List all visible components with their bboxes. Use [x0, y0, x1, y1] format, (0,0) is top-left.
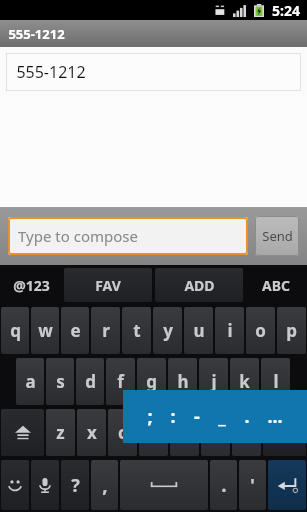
button[interactable]: j	[199, 358, 228, 405]
staticText: k	[239, 370, 250, 393]
button[interactable]: Emoji	[1, 460, 29, 510]
button[interactable]: d	[76, 358, 104, 405]
button[interactable]: Enter	[268, 460, 306, 510]
button[interactable]: FAV	[64, 268, 152, 302]
staticText: .	[244, 404, 250, 429]
staticText: p	[286, 319, 297, 342]
staticText: x	[87, 421, 97, 444]
staticText: '	[250, 474, 255, 497]
staticText: Type to compose	[18, 226, 138, 246]
button[interactable]: p	[277, 307, 306, 354]
button[interactable]: n	[201, 409, 230, 456]
button[interactable]: Type to compose	[8, 217, 248, 255]
staticText: ;	[147, 404, 153, 429]
button[interactable]: s	[46, 358, 74, 405]
button[interactable]: '	[239, 460, 266, 510]
button[interactable]: c	[108, 409, 137, 456]
button[interactable]: ABC	[246, 268, 305, 302]
button[interactable]: ADD	[155, 268, 243, 302]
staticText: 555-1212	[16, 61, 86, 83]
staticText: .	[221, 472, 227, 498]
staticText: e	[70, 319, 81, 342]
button[interactable]: f	[106, 358, 135, 405]
staticText: _	[218, 404, 226, 429]
button[interactable]: Space	[120, 460, 208, 510]
staticText: l	[273, 370, 279, 393]
button[interactable]: ;	[123, 390, 307, 443]
button[interactable]: .	[210, 460, 237, 510]
button[interactable]: v	[139, 409, 168, 456]
staticText: w	[38, 319, 53, 342]
staticText: v	[149, 421, 159, 444]
staticText: t	[133, 319, 141, 342]
staticText: i	[227, 319, 233, 342]
button[interactable]: r	[91, 307, 120, 354]
staticText: ,	[102, 472, 108, 498]
staticText: 5:24	[272, 1, 300, 20]
staticText: ...	[267, 404, 283, 429]
staticText: b	[179, 421, 190, 444]
button[interactable]: u	[184, 307, 213, 354]
staticText: -	[194, 404, 200, 429]
staticText: h	[177, 370, 189, 393]
staticText: q	[10, 319, 21, 342]
staticText: FAV	[95, 276, 121, 295]
staticText: ABC	[262, 276, 290, 295]
staticText: :	[170, 404, 176, 429]
staticText: ADD	[184, 276, 215, 295]
staticText: o	[255, 319, 266, 342]
button[interactable]: h	[168, 358, 197, 405]
staticText: u	[193, 319, 205, 342]
staticText: d	[85, 370, 96, 393]
button[interactable]: b	[170, 409, 199, 456]
button[interactable]: o	[246, 307, 275, 354]
button[interactable]: Send	[255, 216, 299, 256]
button[interactable]: t	[122, 307, 151, 354]
button[interactable]: e	[61, 307, 89, 354]
button[interactable]: ?	[61, 460, 89, 510]
button[interactable]: ,	[91, 460, 118, 510]
staticText: z	[56, 421, 65, 444]
staticText: m	[238, 421, 255, 444]
button[interactable]: Shift	[1, 409, 44, 456]
button[interactable]: q	[1, 307, 29, 354]
staticText: Send	[262, 227, 293, 245]
button[interactable]: Voice input	[31, 460, 59, 510]
staticText: f	[117, 370, 124, 393]
button[interactable]: 555-1212	[6, 53, 301, 91]
button[interactable]: i	[215, 307, 244, 354]
staticText: @123	[13, 276, 50, 295]
staticText: y	[163, 319, 173, 342]
button[interactable]: @123	[2, 268, 61, 302]
staticText: 555-1212	[8, 25, 65, 43]
button[interactable]: x	[77, 409, 106, 456]
button[interactable]: m	[232, 409, 261, 456]
staticText: s	[56, 370, 65, 393]
staticText: a	[25, 370, 36, 393]
button[interactable]: Delete	[263, 409, 306, 456]
button[interactable]: z	[46, 409, 75, 456]
staticText: ?	[71, 473, 80, 498]
staticText: g	[146, 370, 157, 393]
button[interactable]: a	[16, 358, 44, 405]
button[interactable]: l	[261, 358, 290, 405]
staticText: n	[210, 421, 222, 444]
button[interactable]: g	[137, 358, 166, 405]
button[interactable]: y	[153, 307, 182, 354]
staticText: j	[211, 370, 217, 393]
staticText: c	[118, 421, 127, 444]
button[interactable]: w	[31, 307, 59, 354]
button[interactable]: k	[230, 358, 259, 405]
staticText: r	[102, 319, 110, 342]
